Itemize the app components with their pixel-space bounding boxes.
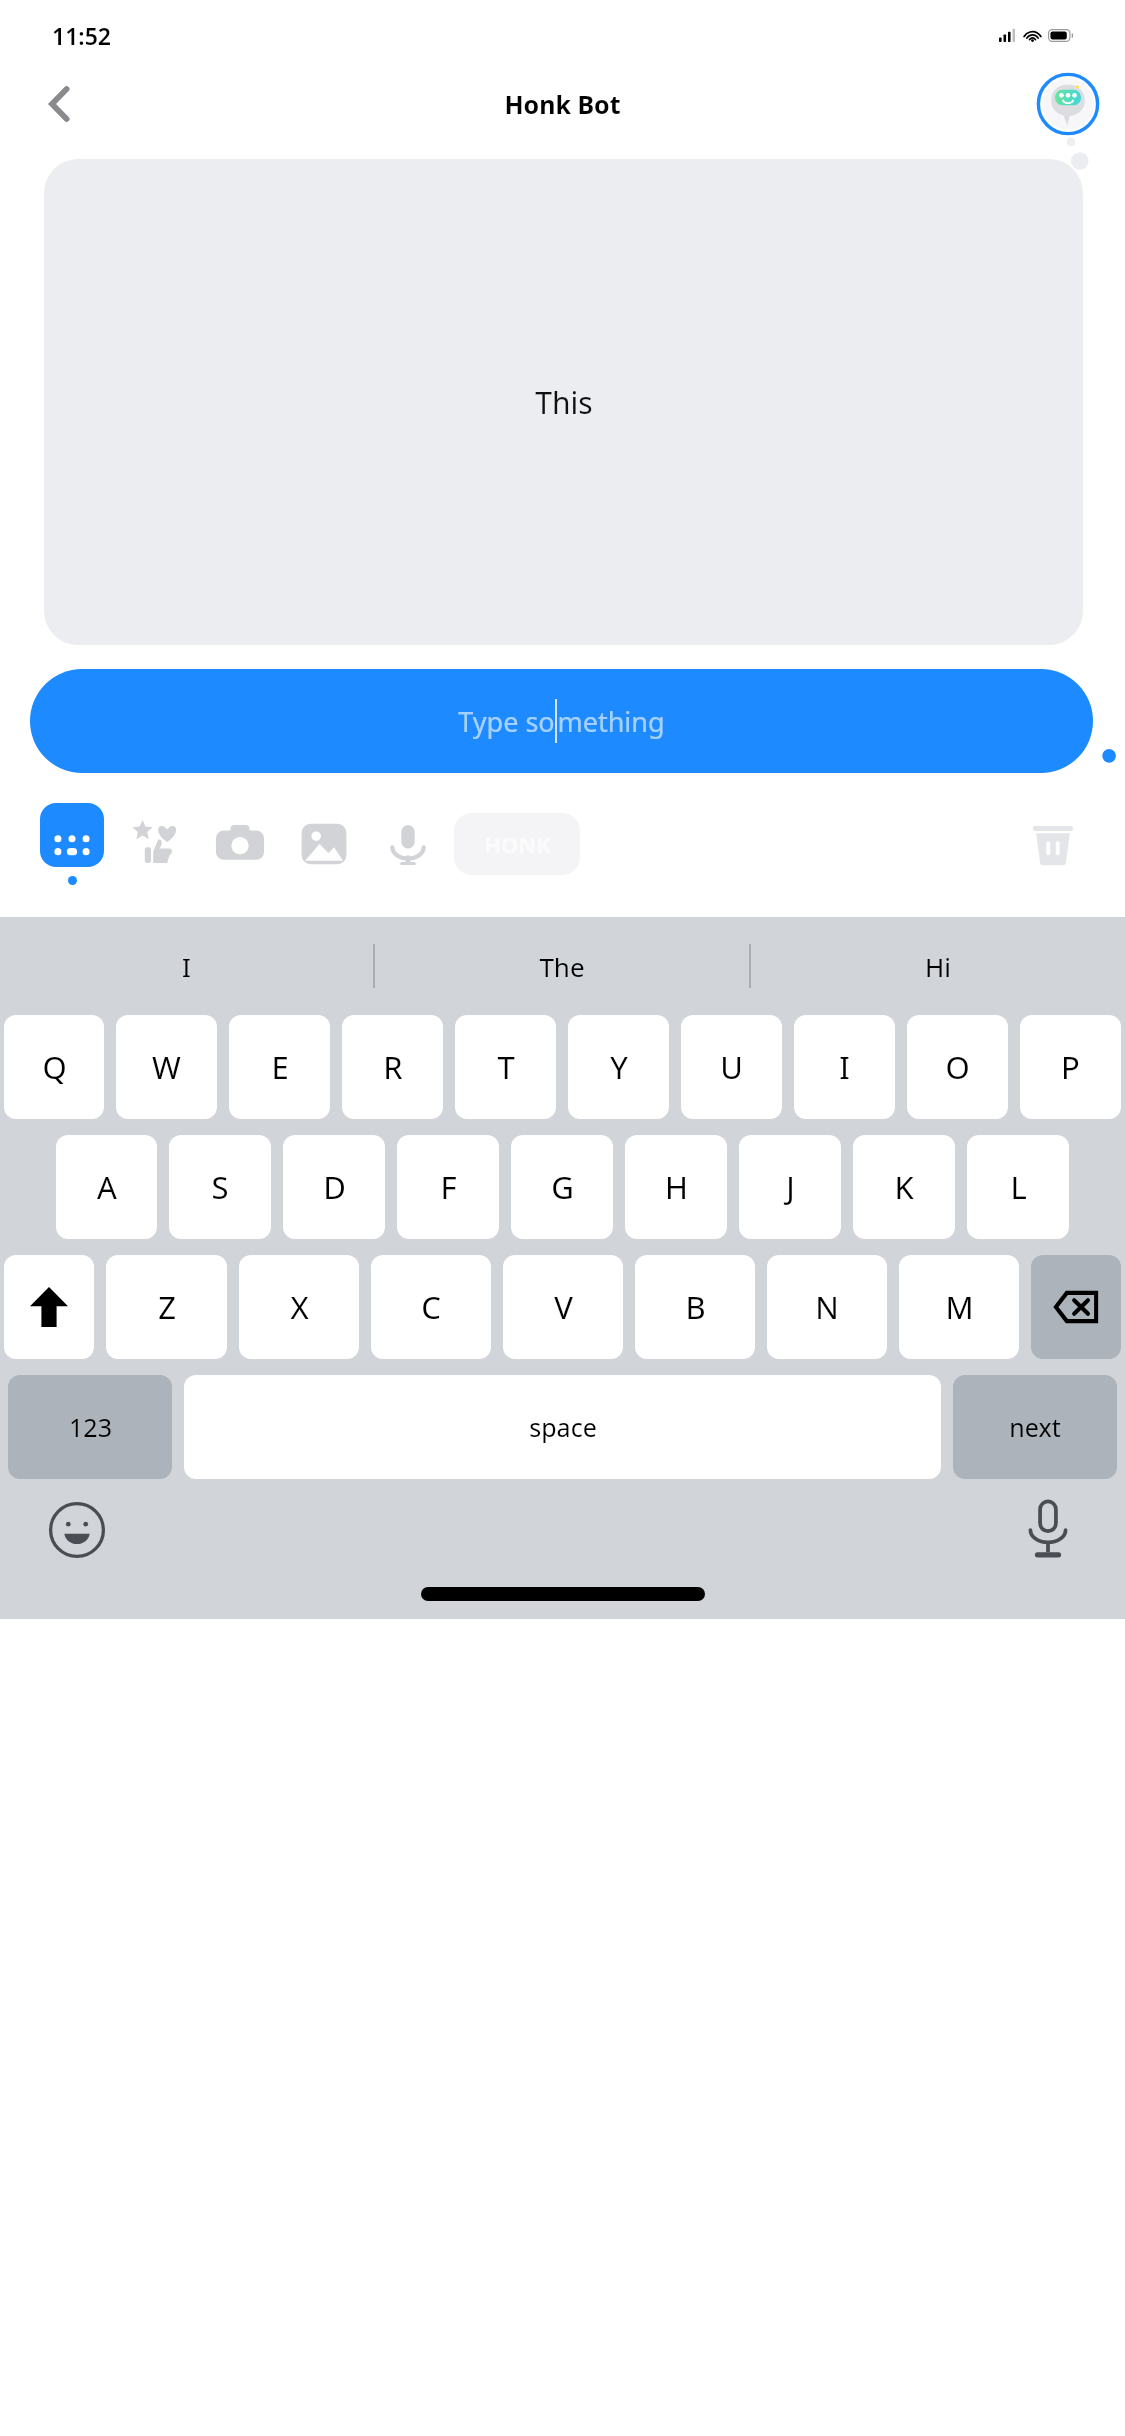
button[interactable]: D (283, 1135, 385, 1239)
staticText: next (1009, 1410, 1061, 1444)
button[interactable]: X (239, 1255, 359, 1359)
staticText: This (535, 382, 593, 423)
button[interactable]: J (739, 1135, 841, 1239)
button[interactable]: Hi (751, 917, 1125, 1015)
button[interactable]: U (681, 1015, 782, 1119)
button[interactable]: next (953, 1375, 1117, 1479)
button[interactable]: E (229, 1015, 330, 1119)
button[interactable]: T (455, 1015, 556, 1119)
button[interactable]: H (625, 1135, 727, 1239)
staticText: X (290, 1286, 309, 1328)
button[interactable]: Type so (30, 669, 1093, 773)
staticText: K (894, 1166, 914, 1208)
staticText: G (551, 1166, 574, 1208)
staticText: D (323, 1166, 346, 1208)
staticText: I (182, 949, 191, 984)
button[interactable]: V (503, 1255, 623, 1359)
staticText: S (211, 1166, 229, 1208)
staticText: H (665, 1166, 688, 1208)
staticText: 11:52 (52, 20, 111, 51)
button[interactable]: Voice message (376, 812, 440, 876)
staticText: N (815, 1286, 839, 1328)
button[interactable]: Shift (4, 1255, 94, 1359)
staticText: C (421, 1286, 441, 1328)
staticText: M (945, 1286, 974, 1328)
button[interactable]: G (511, 1135, 613, 1239)
button[interactable]: Dictation (1013, 1495, 1083, 1565)
button[interactable]: Delete (1021, 812, 1085, 876)
staticText: mething (557, 703, 665, 740)
button[interactable]: Keyboard (40, 803, 104, 885)
staticText: Q (42, 1046, 67, 1088)
staticText: I (839, 1046, 850, 1088)
staticText: V (554, 1286, 573, 1328)
button[interactable]: space (184, 1375, 941, 1479)
staticText: 123 (69, 1410, 112, 1444)
button[interactable]: Camera (208, 812, 272, 876)
button[interactable]: F (397, 1135, 499, 1239)
staticText: F (440, 1166, 457, 1208)
button[interactable]: N (767, 1255, 887, 1359)
staticText: R (383, 1046, 403, 1088)
staticText: U (720, 1046, 743, 1088)
button[interactable]: B (635, 1255, 755, 1359)
button[interactable]: The (375, 917, 749, 1015)
staticText: Z (158, 1286, 176, 1328)
button[interactable]: Z (106, 1255, 227, 1359)
button[interactable]: S (169, 1135, 271, 1239)
staticText: Hi (925, 949, 951, 984)
button[interactable]: I (0, 917, 373, 1015)
staticText: E (271, 1046, 289, 1088)
button[interactable]: Y (568, 1015, 669, 1119)
button[interactable]: K (853, 1135, 955, 1239)
staticText: The (539, 949, 585, 984)
staticText: P (1061, 1046, 1080, 1088)
staticText: L (1010, 1166, 1027, 1208)
staticText: O (945, 1046, 970, 1088)
staticText: B (685, 1286, 706, 1328)
button[interactable]: Emoji (42, 1495, 112, 1565)
staticText: W (152, 1046, 181, 1088)
staticText: Y (610, 1046, 628, 1088)
staticText: T (497, 1046, 515, 1088)
button[interactable]: P (1020, 1015, 1121, 1119)
staticText: space (529, 1410, 597, 1444)
button[interactable]: W (116, 1015, 217, 1119)
button[interactable]: Photos (292, 812, 356, 876)
button[interactable]: A (56, 1135, 157, 1239)
button[interactable]: I (794, 1015, 895, 1119)
staticText: Type so (458, 703, 555, 740)
button[interactable]: L (967, 1135, 1069, 1239)
button[interactable]: R (342, 1015, 443, 1119)
button[interactable]: M (899, 1255, 1019, 1359)
button[interactable]: Backspace (1031, 1255, 1121, 1359)
staticText: A (97, 1166, 117, 1208)
button[interactable]: 123 (8, 1375, 172, 1479)
button[interactable]: O (907, 1015, 1008, 1119)
button[interactable]: C (371, 1255, 491, 1359)
button[interactable]: Q (4, 1015, 104, 1119)
staticText: Honk Bot (504, 87, 621, 121)
button[interactable]: This (44, 159, 1083, 645)
button[interactable]: Stickers (124, 812, 188, 876)
staticText: J (786, 1166, 795, 1208)
button[interactable]: Back (30, 75, 88, 133)
button[interactable]: Bot profile (1037, 73, 1099, 135)
